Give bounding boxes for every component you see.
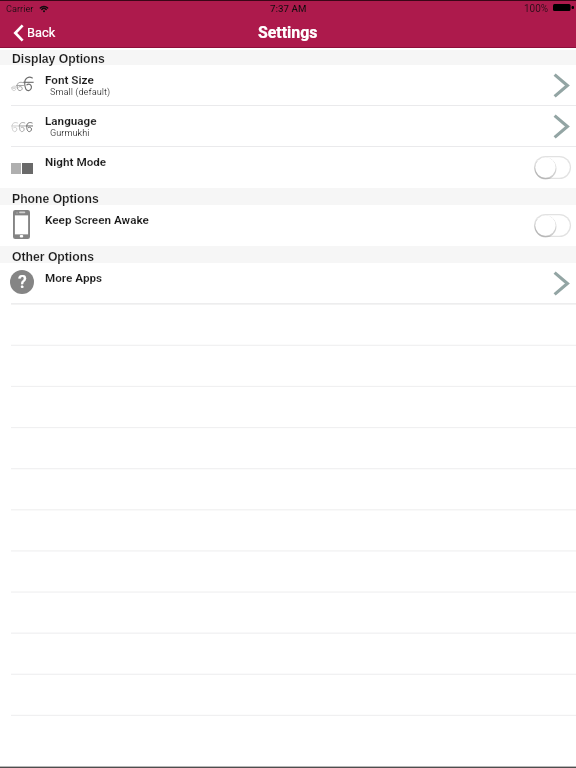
staticText: Other Options (12, 250, 94, 264)
staticText: Keep Screen Awake (45, 213, 149, 227)
staticText: 7:37 AM (270, 3, 307, 14)
button[interactable]: Night Mode toggle (0, 147, 576, 188)
staticText: ? (18, 271, 27, 292)
staticText: Phone Options (12, 192, 99, 206)
staticText: Night Mode (45, 155, 107, 169)
button[interactable]: ? (0, 263, 576, 304)
button[interactable]: Language (0, 106, 576, 147)
staticText: Font Size (45, 73, 94, 87)
staticText: Back (27, 25, 56, 40)
staticText: More Apps (45, 271, 103, 285)
button[interactable]: Keep Screen Awake toggle (534, 214, 571, 237)
staticText: Carrier (6, 3, 34, 14)
button[interactable]: Night Mode toggle (534, 156, 571, 179)
staticText: Small (default) (50, 86, 111, 97)
staticText: Gurmukhi (50, 127, 90, 138)
staticText: Settings (258, 23, 318, 42)
button[interactable]: Font Size (0, 65, 576, 106)
button[interactable]: Back (0, 20, 66, 48)
button[interactable]: Keep Screen Awake toggle (0, 205, 576, 246)
staticText: 100% (524, 3, 549, 15)
staticText: Language (45, 114, 97, 128)
staticText: Display Options (12, 52, 105, 66)
